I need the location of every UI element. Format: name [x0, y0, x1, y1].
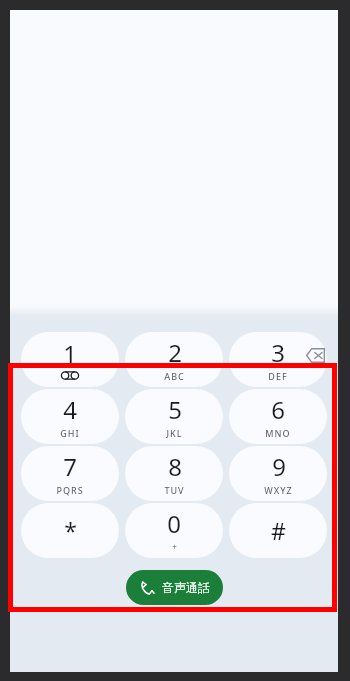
staticText: 3: [271, 336, 285, 369]
button[interactable]: 8: [125, 446, 223, 501]
staticText: *: [64, 515, 77, 546]
button[interactable]: 2: [125, 332, 223, 387]
button[interactable]: #: [229, 503, 327, 558]
staticText: 4: [63, 393, 77, 426]
button[interactable]: 7: [21, 446, 119, 501]
staticText: 6: [271, 393, 285, 426]
staticText: +: [172, 541, 177, 552]
staticText: 音声通話: [162, 580, 210, 595]
staticText: 1: [63, 337, 77, 370]
button[interactable]: Backspace: [300, 340, 330, 370]
button[interactable]: 0: [125, 503, 223, 558]
staticText: 0: [167, 507, 181, 540]
staticText: 5: [168, 393, 182, 426]
staticText: 9: [272, 450, 286, 483]
button[interactable]: 3: [229, 332, 327, 387]
staticText: 8: [168, 450, 182, 483]
button[interactable]: 5: [125, 389, 223, 444]
staticText: GHI: [60, 427, 80, 439]
staticText: WXYZ: [264, 484, 293, 496]
staticText: JKL: [166, 427, 183, 439]
button[interactable]: 1: [21, 332, 119, 387]
button[interactable]: 音声通話: [126, 570, 223, 605]
button[interactable]: 6: [229, 389, 327, 444]
staticText: TUV: [164, 484, 185, 496]
button[interactable]: 4: [21, 389, 119, 444]
staticText: 2: [168, 336, 182, 369]
staticText: MNO: [265, 427, 291, 439]
staticText: ABC: [164, 370, 185, 382]
staticText: 7: [63, 450, 77, 483]
staticText: #: [271, 515, 286, 546]
button[interactable]: *: [21, 503, 119, 558]
staticText: PQRS: [56, 484, 84, 496]
staticText: DEF: [268, 370, 288, 382]
button[interactable]: 9: [229, 446, 327, 501]
